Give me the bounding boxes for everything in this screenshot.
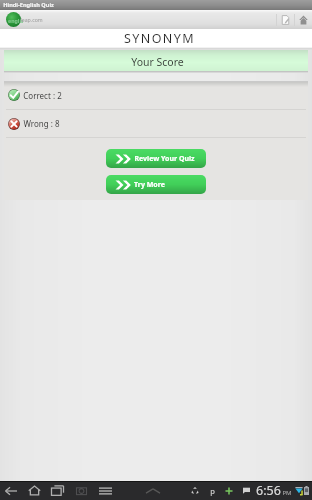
- button[interactable]: Home: [295, 11, 312, 28]
- button[interactable]: Review Your Quiz: [106, 149, 206, 168]
- staticText: SYNONYM: [124, 30, 195, 47]
- staticText: Wrong : 8: [23, 118, 60, 129]
- button[interactable]: Home: [23, 481, 45, 500]
- staticText: PM: [282, 489, 292, 497]
- staticText: 6:56: [256, 482, 281, 499]
- staticText: Hindi-English Quiz: [3, 1, 54, 9]
- button[interactable]: Recent apps: [46, 481, 68, 500]
- staticText: Review Your Quiz: [134, 154, 195, 164]
- staticText: Your Score: [131, 55, 184, 69]
- button[interactable]: Correct : 2: [4, 81, 308, 109]
- button[interactable]: Try More: [106, 175, 206, 194]
- staticText: leap.com: [20, 16, 43, 23]
- staticText: Correct : 2: [23, 90, 62, 101]
- staticText: p: [210, 486, 215, 496]
- button[interactable]: Back: [0, 481, 22, 500]
- button[interactable]: Wrong : 8: [4, 110, 308, 137]
- button[interactable]: Edit: [277, 11, 294, 28]
- staticText: Try More: [134, 180, 165, 190]
- button[interactable]: Menu: [94, 481, 116, 500]
- staticText: english: [8, 17, 23, 24]
